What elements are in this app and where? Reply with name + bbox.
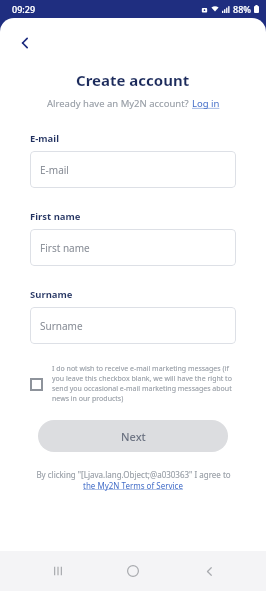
staticText: Already have an My2N account?	[47, 97, 192, 110]
staticText: I do not wish to receive e-mail marketin…	[52, 364, 236, 404]
staticText: 09:29	[12, 3, 36, 15]
button[interactable]: First name	[30, 229, 236, 266]
button[interactable]: Home	[115, 553, 151, 589]
button[interactable]: the My2N Terms of Service	[83, 480, 183, 491]
staticText: Create account	[76, 70, 190, 90]
button[interactable]: I do not wish to receive e-mail marketin…	[30, 364, 236, 404]
staticText: E-mail	[40, 163, 69, 177]
staticText: By clicking "[Ljava.lang.Object;@a030363…	[36, 469, 231, 480]
staticText: E-mail	[30, 132, 59, 145]
button[interactable]: Back	[191, 553, 227, 589]
button[interactable]: E-mail	[30, 151, 236, 188]
staticText: Log in	[192, 97, 220, 110]
staticText: First name	[30, 210, 81, 223]
staticText: 88%	[233, 3, 251, 15]
staticText: Next	[121, 429, 146, 444]
button[interactable]: Recent apps	[40, 553, 76, 589]
staticText: Surname	[30, 288, 73, 301]
button[interactable]: Back	[10, 28, 40, 58]
staticText: First name	[40, 241, 90, 255]
staticText: the My2N Terms of Service	[83, 480, 183, 491]
button[interactable]: Log in	[192, 97, 220, 110]
button[interactable]: Surname	[30, 307, 236, 344]
button[interactable]: Next	[38, 420, 228, 452]
staticText: Surname	[40, 319, 83, 333]
